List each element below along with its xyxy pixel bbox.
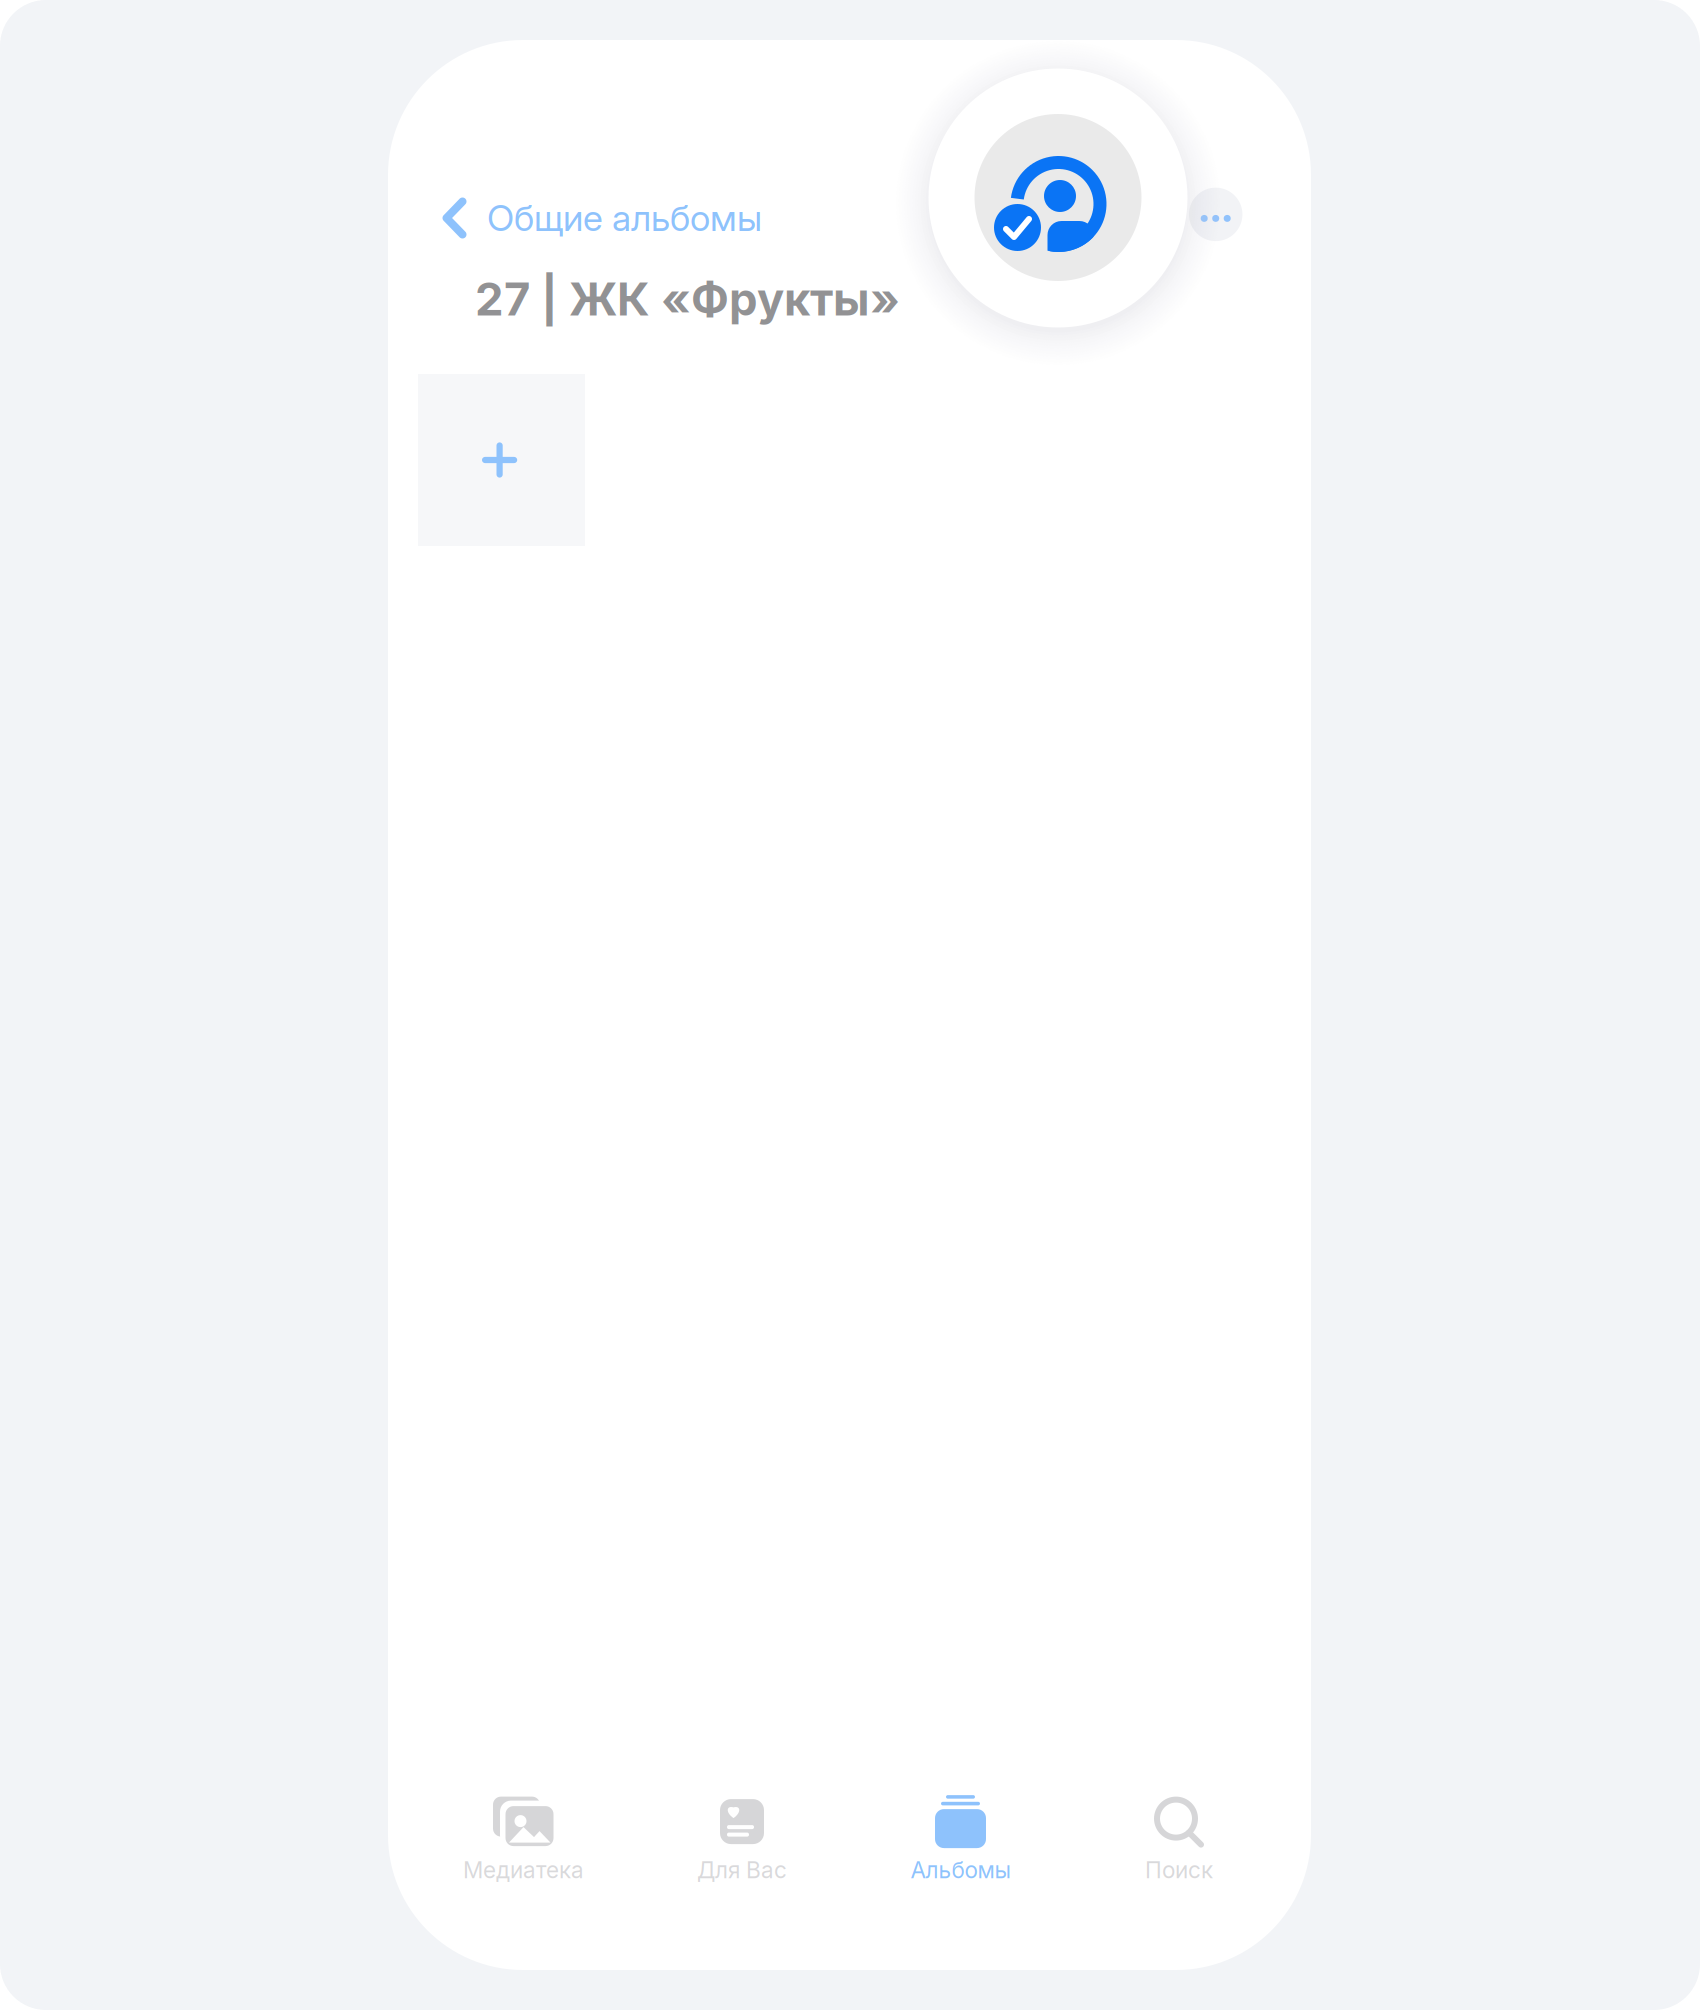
button[interactable]: Поиск <box>1070 1762 1288 1880</box>
button[interactable]: Shared album participants <box>928 68 1187 327</box>
button[interactable]: Для Вас <box>633 1762 851 1880</box>
staticText: Для Вас <box>697 1856 787 1884</box>
staticText: Общие альбомы <box>487 196 762 240</box>
button[interactable]: Add photos <box>418 374 585 546</box>
button[interactable]: Общие альбомы <box>430 186 780 250</box>
staticText: Поиск <box>1145 1856 1213 1884</box>
button[interactable]: Альбомы <box>851 1762 1070 1880</box>
button[interactable]: More options <box>1189 188 1242 241</box>
staticText: Альбомы <box>910 1856 1010 1884</box>
button[interactable]: Медиатека <box>414 1762 633 1880</box>
staticText: 27 | ЖК «Фрукты» <box>475 272 900 326</box>
staticText: Медиатека <box>463 1856 584 1884</box>
